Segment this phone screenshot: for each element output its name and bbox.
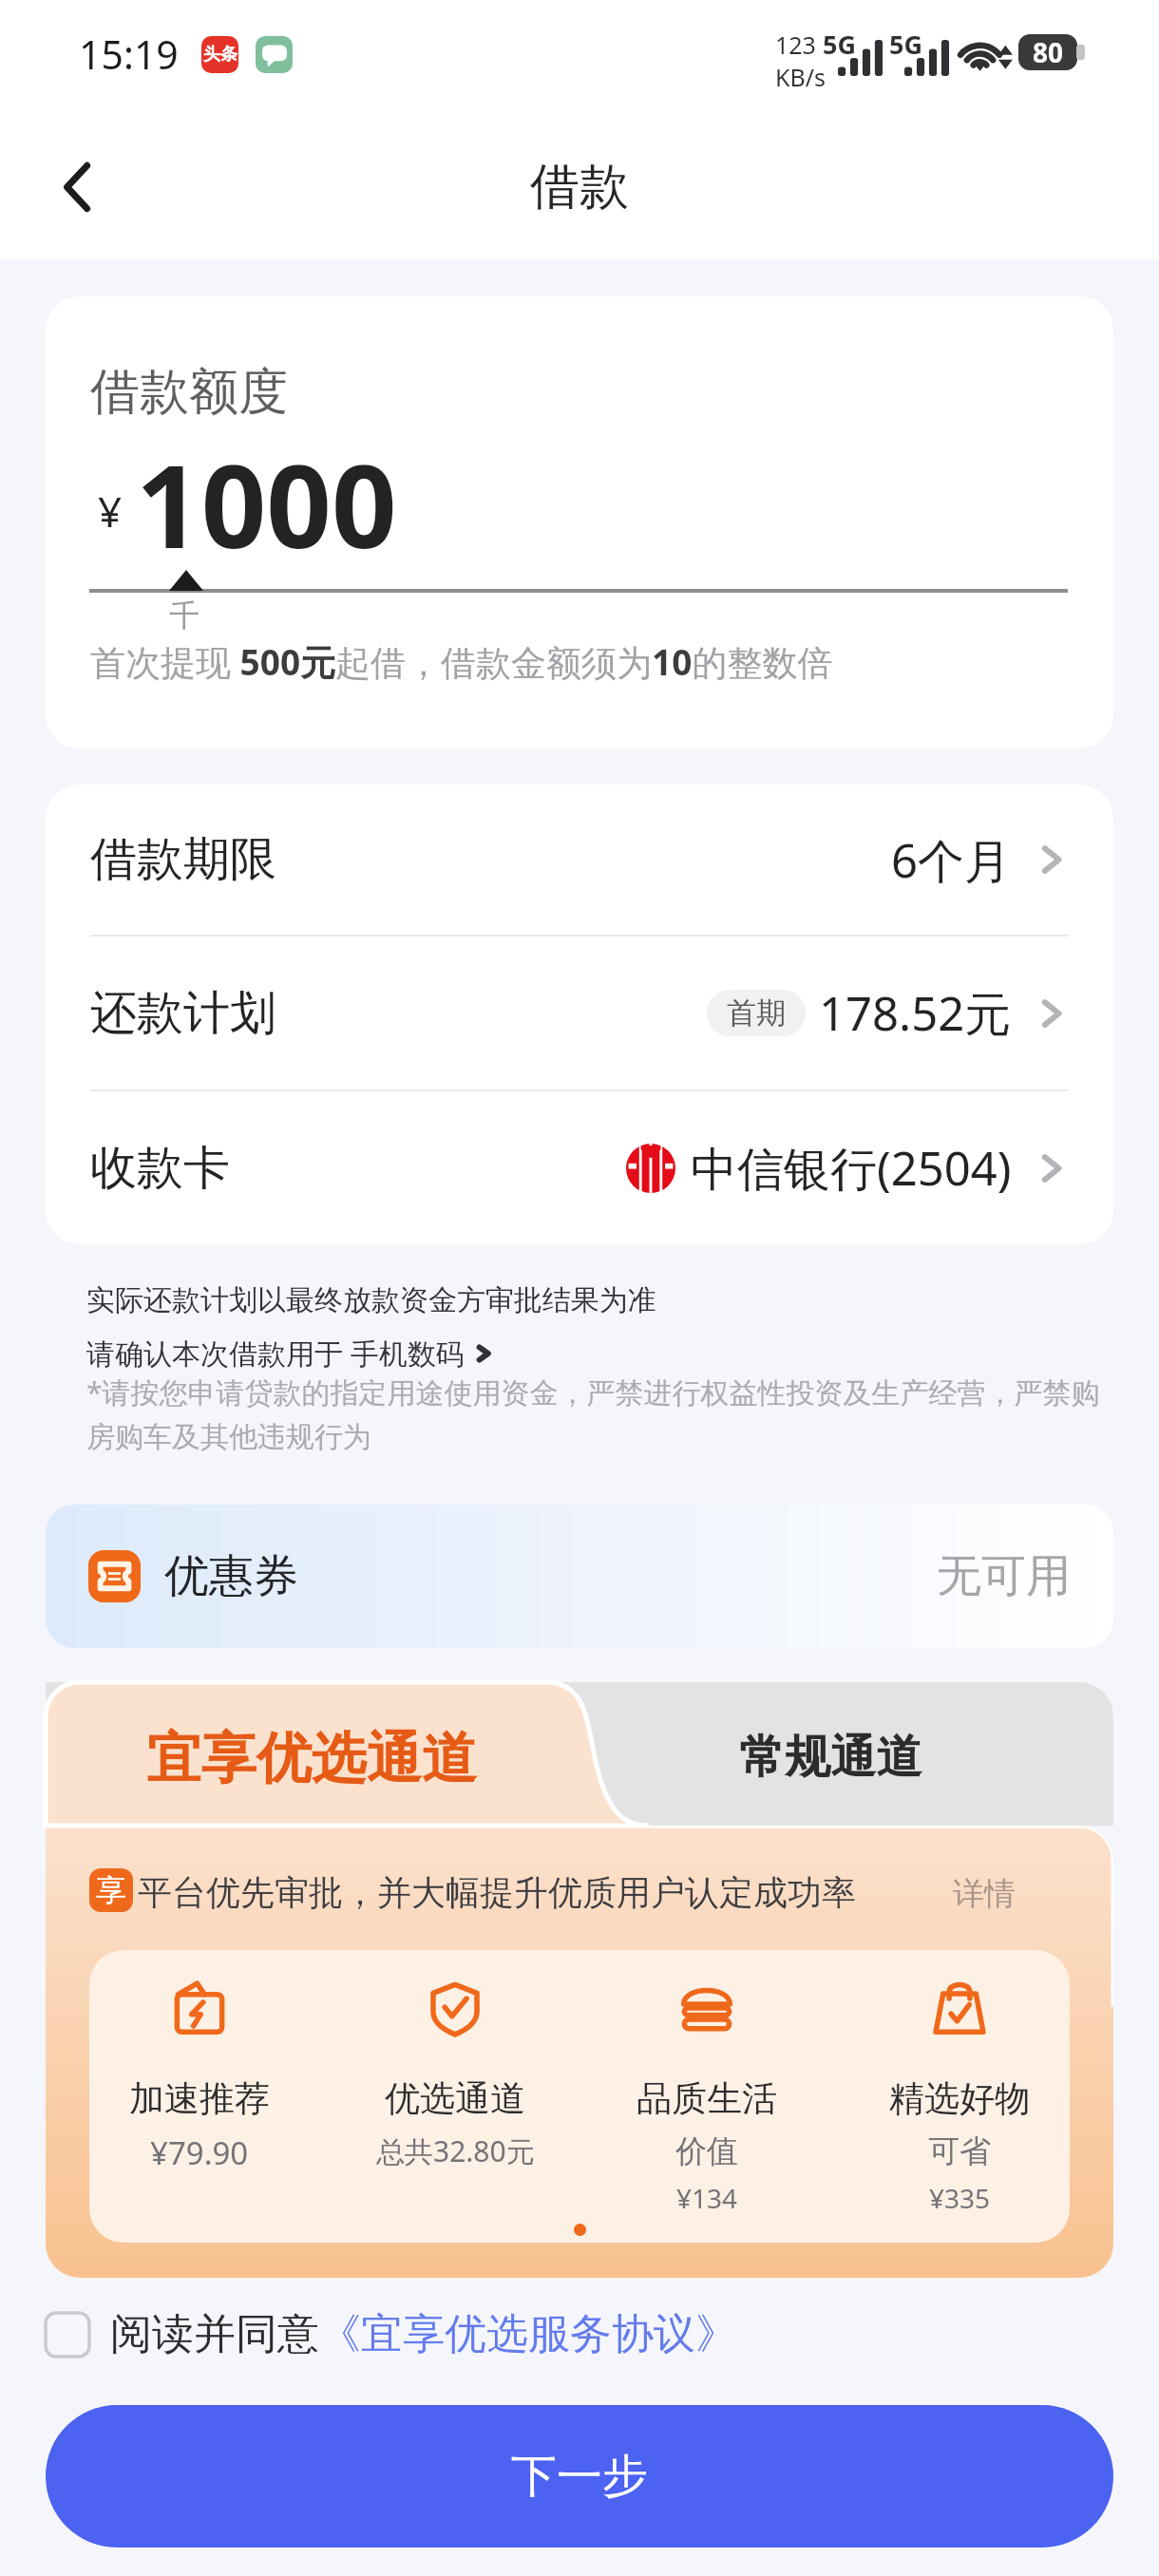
staticText: KB/s (775, 61, 826, 93)
staticText: 优选通道 (385, 2076, 525, 2121)
button[interactable]: 品质生活 (617, 1979, 796, 2216)
staticText: 阅读并同意《宜享优选服务协议》 (110, 2308, 737, 2360)
button[interactable]: 收款卡 (46, 1091, 1113, 1244)
staticText: 1000 (136, 426, 397, 581)
staticText: 借款额度 (90, 361, 288, 424)
staticText: 平台优先审批，并大幅提升优质用户认定成功率 (138, 1871, 856, 1914)
staticText: 5G (889, 27, 922, 62)
staticText: 头条 (203, 44, 237, 66)
staticText: 实际还款计划以最终放款资金方审批结果为准 (86, 1282, 656, 1318)
staticText: 借款 (530, 156, 629, 218)
staticText: 5G (823, 27, 856, 62)
staticText: ¥335 (929, 2180, 991, 2216)
button[interactable]: 阅读并同意《宜享优选服务协议》 (46, 2308, 737, 2360)
staticText: 可省 (928, 2131, 991, 2171)
staticText: 下一步 (511, 2448, 648, 2505)
button[interactable]: 精选好物 (870, 1979, 1049, 2216)
staticText: 品质生活 (636, 2076, 777, 2121)
staticText: 首期 (727, 994, 786, 1032)
button[interactable]: 下一步 (46, 2405, 1113, 2548)
staticText: 请确认本次借款用于 手机数码 (86, 1334, 465, 1373)
staticText: 优惠券 (164, 1548, 298, 1604)
staticText: 常规通道 (739, 1729, 921, 1786)
staticText: 千 (169, 597, 199, 635)
button[interactable]: 借款期限 (46, 785, 1113, 935)
staticText: 享 (96, 1871, 126, 1909)
staticText: 123 (775, 28, 816, 61)
button[interactable]: 优选通道 (366, 1979, 544, 2170)
button[interactable] (46, 1682, 649, 1826)
staticText: 15:19 (79, 28, 179, 81)
button[interactable]: 加速推荐 (110, 1979, 289, 2174)
button[interactable]: 请确认本次借款用于 手机数码 (86, 1334, 494, 1373)
staticText: 收款卡 (90, 1139, 230, 1198)
staticText: 还款计划 (90, 984, 276, 1043)
staticText: 中信银行(2504) (691, 1136, 1012, 1200)
staticText: 精选好物 (889, 2076, 1030, 2121)
button[interactable]: 详情 (953, 1874, 1016, 1914)
staticText: 80 (1033, 34, 1064, 70)
staticText: 加速推荐 (129, 2076, 270, 2121)
staticText: ¥ (98, 483, 123, 540)
staticText: 无可用 (937, 1548, 1071, 1604)
staticText: 借款期限 (90, 830, 276, 889)
button[interactable]: 还款计划 (46, 937, 1113, 1089)
staticText: ¥134 (676, 2180, 738, 2216)
staticText: 价值 (675, 2131, 738, 2171)
button[interactable] (46, 1682, 1113, 1826)
button[interactable]: Back (33, 142, 124, 233)
staticText: 总共32.80元 (376, 2131, 535, 2170)
staticText: 6个月 (891, 828, 1012, 892)
staticText: 178.52元 (819, 981, 1012, 1045)
staticText: *请按您申请贷款的指定用途使用资金，严禁进行权益性投资及生产经营，严禁购房购车及… (86, 1373, 1113, 1455)
button[interactable]: 优惠券 (46, 1505, 1113, 1648)
staticText: 首次提现 500元起借，借款金额须为10的整数倍 (90, 637, 833, 686)
staticText: 宜享优选通道 (146, 1724, 477, 1793)
staticText: ¥79.90 (150, 2131, 249, 2174)
